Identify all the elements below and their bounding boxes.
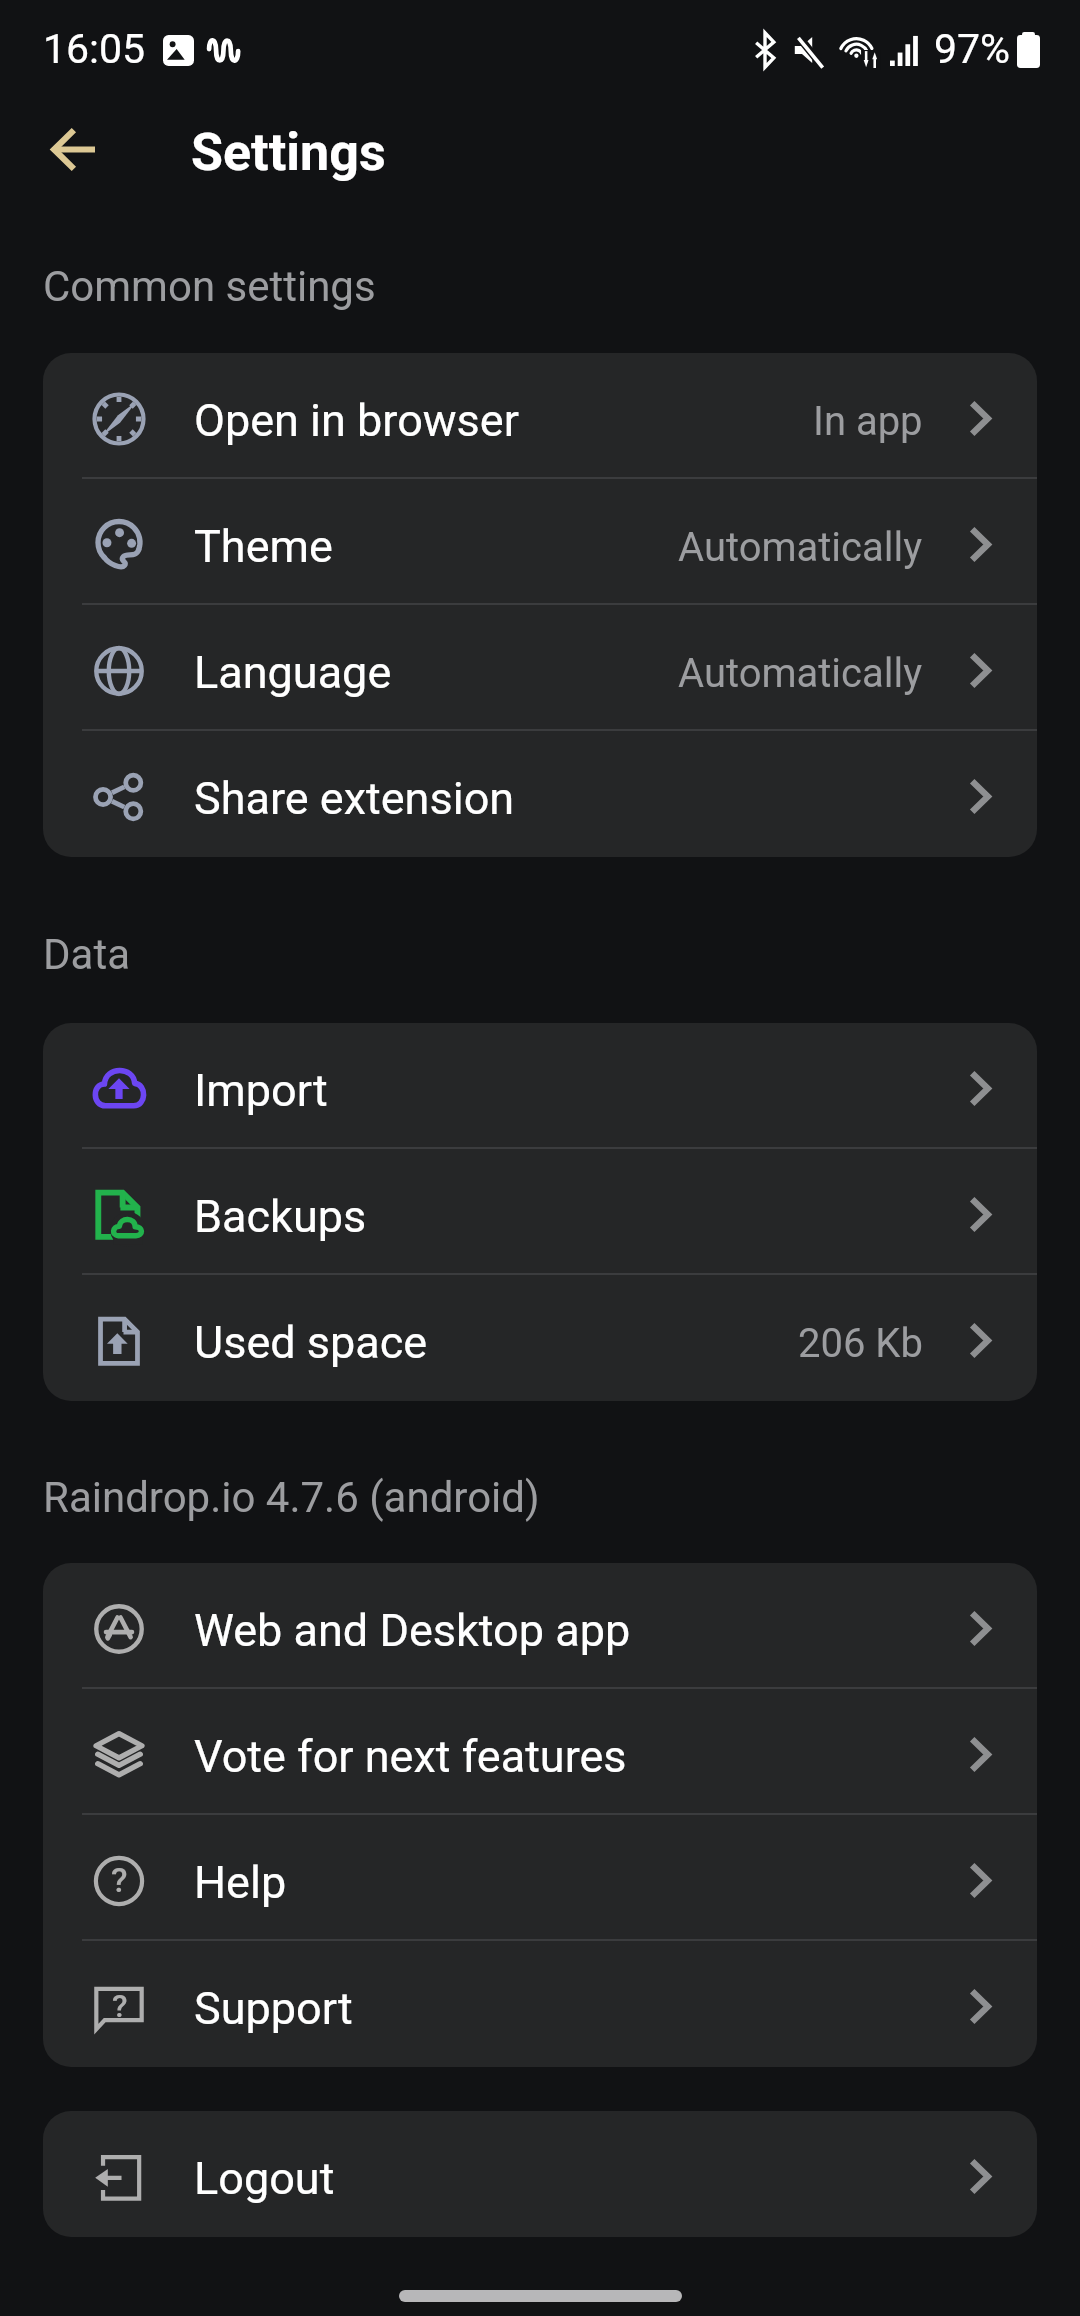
staticText: Settings bbox=[191, 122, 386, 183]
staticText: Language bbox=[194, 646, 392, 699]
staticText: ? bbox=[111, 1860, 128, 1900]
staticText: Help bbox=[194, 1856, 287, 1909]
button[interactable]: ? bbox=[43, 1815, 1037, 1941]
button[interactable]: Used space bbox=[43, 1275, 1037, 1401]
button[interactable]: Back bbox=[28, 114, 118, 204]
staticText: Backups bbox=[194, 1190, 367, 1243]
staticText: Support bbox=[194, 1982, 353, 2035]
staticText: Raindrop.io 4.7.6 (android) bbox=[43, 1473, 540, 1522]
staticText: Common settings bbox=[43, 262, 376, 311]
staticText: Theme bbox=[194, 520, 333, 573]
staticText: Open in browser bbox=[194, 394, 519, 447]
staticText: In app bbox=[813, 398, 923, 445]
button[interactable]: ? bbox=[43, 1941, 1037, 2067]
staticText: Vote for next features bbox=[194, 1730, 627, 1783]
button[interactable]: Language bbox=[43, 605, 1037, 731]
staticText: ? bbox=[112, 1987, 128, 2025]
button[interactable]: Import bbox=[43, 1023, 1037, 1149]
staticText: Import bbox=[194, 1064, 328, 1117]
staticText: 16:05 bbox=[43, 25, 146, 73]
staticText: Used space bbox=[194, 1316, 428, 1369]
staticText: Data bbox=[43, 930, 130, 979]
staticText: Automatically bbox=[678, 524, 923, 571]
button[interactable]: Share extension bbox=[43, 731, 1037, 857]
button[interactable]: Theme bbox=[43, 479, 1037, 605]
staticText: 97% bbox=[934, 25, 1011, 73]
staticText: Share extension bbox=[194, 772, 515, 825]
button[interactable]: Backups bbox=[43, 1149, 1037, 1275]
button[interactable]: Vote for next features bbox=[43, 1689, 1037, 1815]
button[interactable]: Logout bbox=[43, 2111, 1037, 2237]
button[interactable]: Web and Desktop app bbox=[43, 1563, 1037, 1689]
staticText: Automatically bbox=[678, 650, 923, 697]
button[interactable]: Open in browser bbox=[43, 353, 1037, 479]
staticText: Web and Desktop app bbox=[194, 1604, 631, 1657]
staticText: Logout bbox=[194, 2152, 335, 2205]
staticText: 206 Kb bbox=[798, 1320, 923, 1367]
